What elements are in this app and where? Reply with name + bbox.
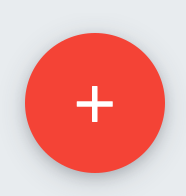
button[interactable]: Add — [25, 33, 165, 173]
